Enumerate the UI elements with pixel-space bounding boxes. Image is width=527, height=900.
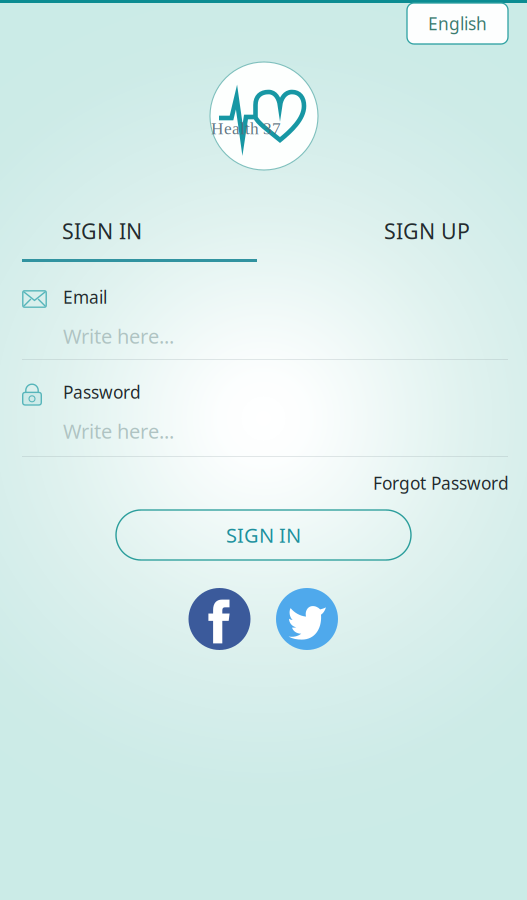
button[interactable]: English bbox=[407, 3, 508, 44]
staticText: SIGN UP bbox=[384, 217, 470, 245]
staticText: English bbox=[428, 12, 487, 35]
button[interactable]: SIGN IN bbox=[116, 510, 411, 560]
staticText: Password bbox=[63, 380, 141, 403]
button[interactable]: Sign in with Facebook bbox=[188, 588, 250, 650]
staticText: SIGN IN bbox=[62, 217, 142, 245]
staticText: Health 37 bbox=[211, 119, 281, 138]
staticText: Write here... bbox=[63, 323, 174, 349]
button[interactable]: Sign in with Twitter bbox=[276, 588, 338, 650]
button[interactable]: Forgot Password bbox=[309, 468, 509, 498]
button[interactable]: SIGN IN bbox=[27, 210, 177, 252]
staticText: Write here... bbox=[63, 418, 174, 444]
staticText: SIGN IN bbox=[226, 522, 301, 548]
staticText: Forgot Password bbox=[373, 471, 509, 494]
staticText: Email bbox=[63, 285, 107, 308]
button[interactable]: SIGN UP bbox=[352, 210, 502, 252]
